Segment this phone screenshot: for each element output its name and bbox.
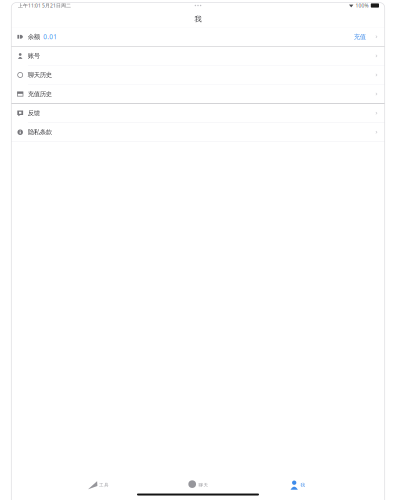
button[interactable]: 工具: [49, 479, 148, 491]
staticText: 充值历史: [28, 90, 52, 98]
button[interactable]: 账号: [11, 47, 385, 65]
button[interactable]: 反馈: [11, 104, 385, 122]
button[interactable]: 聊天历史: [11, 66, 385, 84]
staticText: 我: [194, 14, 201, 24]
staticText: 100%: [356, 2, 369, 9]
staticText: 上午11:01 5月21日周二: [18, 2, 71, 9]
staticText: 0.01: [43, 32, 57, 41]
staticText: 余额: [28, 33, 40, 41]
button[interactable]: 余额: [11, 27, 385, 46]
staticText: 聊天: [199, 482, 209, 488]
staticText: 聊天历史: [28, 71, 52, 79]
staticText: 工具: [99, 482, 109, 488]
staticText: 隐私条款: [28, 128, 52, 136]
staticText: 账号: [28, 52, 40, 60]
staticText: 我: [301, 482, 306, 488]
button[interactable]: 隐私条款: [11, 123, 385, 141]
button[interactable]: 充值历史: [11, 85, 385, 103]
staticText: 反馈: [28, 109, 40, 117]
staticText: 充值: [354, 33, 366, 41]
button[interactable]: 聊天: [148, 479, 248, 491]
button[interactable]: 我: [248, 479, 347, 491]
